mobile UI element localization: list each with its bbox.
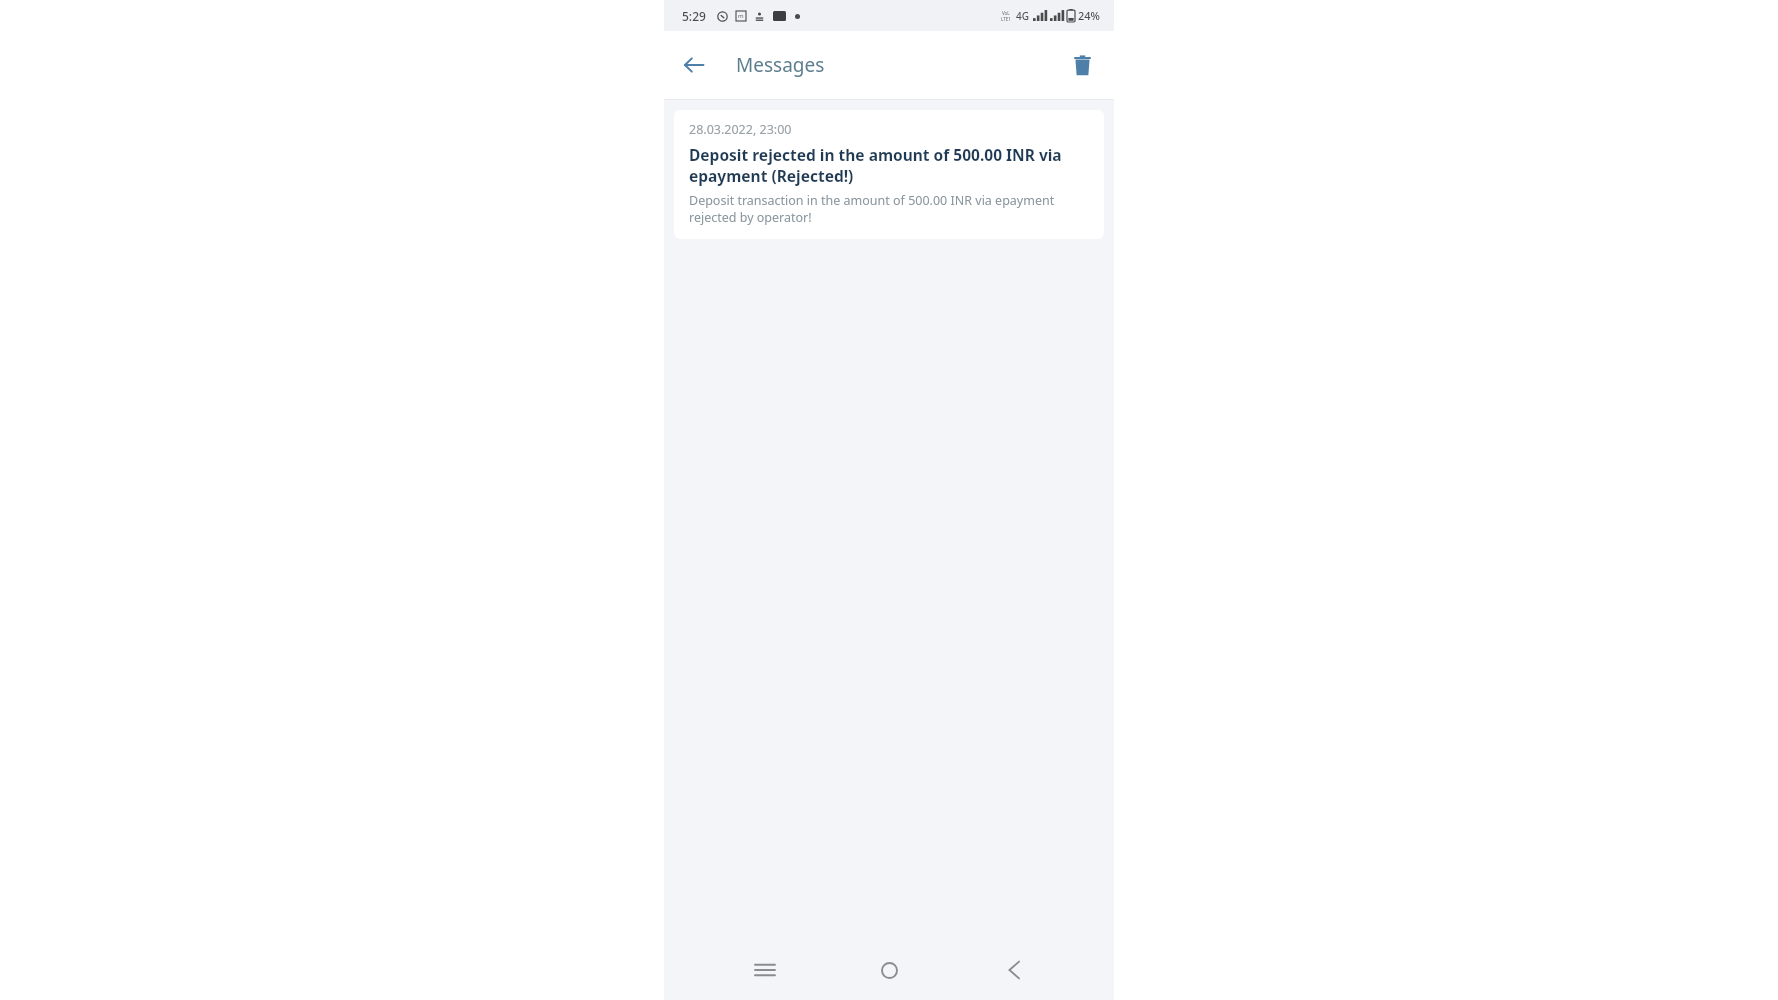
button[interactable]: Recent apps — [741, 946, 789, 994]
staticText: 24% — [1078, 8, 1100, 23]
button[interactable]: Home — [865, 946, 913, 994]
staticText: 28.03.2022, 23:00 — [689, 121, 792, 138]
button[interactable]: 28.03.2022, 23:00 — [674, 110, 1104, 239]
button[interactable]: Back — [990, 946, 1038, 994]
staticText: LTE1 — [1001, 16, 1011, 22]
staticText: m — [738, 12, 744, 20]
staticText: Messages — [736, 52, 825, 78]
staticText: Deposit transaction in the amount of 500… — [689, 192, 1089, 226]
staticText: 4G — [1016, 9, 1029, 23]
staticText: Deposit rejected in the amount of 500.00… — [689, 144, 1089, 186]
button[interactable]: Back — [672, 43, 716, 87]
button[interactable]: Delete all messages — [1060, 43, 1104, 87]
staticText: 5:29 — [682, 8, 706, 24]
staticText: VoL — [1002, 10, 1010, 16]
